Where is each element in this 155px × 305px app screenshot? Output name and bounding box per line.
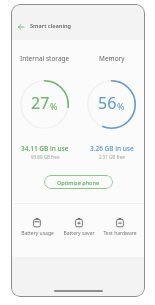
staticText: 27 [31, 92, 50, 114]
button[interactable]: Battery saver [58, 218, 99, 237]
button[interactable]: Battery usage [16, 218, 58, 237]
staticText: 3.26 GB in use [90, 144, 134, 153]
button[interactable]: Test hardware [99, 218, 140, 237]
staticText: Battery saver [63, 230, 95, 237]
button[interactable]: Back [14, 20, 27, 33]
staticText: 56 [98, 92, 117, 114]
staticText: % [50, 100, 58, 112]
staticText: 93.89 GB free [31, 154, 60, 160]
staticText: Test hardware [103, 230, 137, 237]
staticText: Internal storage [20, 54, 70, 63]
staticText: % [117, 100, 125, 112]
staticText: Memory [99, 54, 125, 63]
staticText: 2.51 GB free [99, 154, 125, 160]
staticText: Battery usage [21, 230, 54, 237]
staticText: Smart cleaning [30, 22, 72, 30]
staticText: 34.11 GB in use [21, 144, 69, 153]
staticText: Optimize phone [57, 179, 100, 186]
button[interactable]: Optimize phone [44, 175, 113, 189]
